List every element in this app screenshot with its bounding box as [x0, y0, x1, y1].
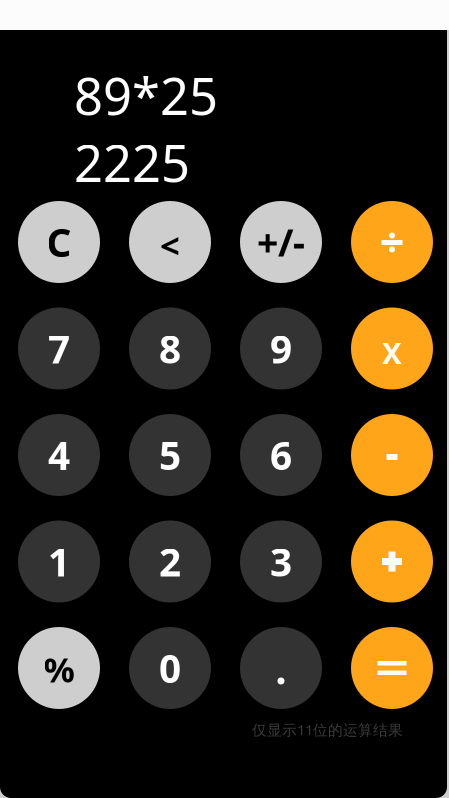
button[interactable]: 7: [18, 307, 100, 389]
button[interactable]: Toggle sign: [240, 201, 322, 283]
button[interactable]: Percent: [18, 627, 100, 709]
button[interactable]: 6: [240, 414, 322, 496]
button[interactable]: Minus: [351, 414, 433, 496]
button[interactable]: Plus: [351, 520, 433, 602]
staticText: 5: [159, 429, 181, 481]
staticText: 2225: [74, 129, 190, 196]
staticText: 6: [270, 429, 292, 481]
button[interactable]: 0: [129, 627, 211, 709]
button[interactable]: 5: [129, 414, 211, 496]
staticText: 0: [159, 642, 181, 694]
staticText: %: [43, 646, 74, 692]
button[interactable]: Equals: [351, 627, 433, 709]
staticText: 3: [270, 536, 292, 587]
button[interactable]: 2: [129, 520, 211, 602]
staticText: 2: [159, 536, 181, 587]
staticText: X: [382, 333, 402, 372]
staticText: C: [46, 216, 71, 268]
button[interactable]: 4: [18, 414, 100, 496]
staticText: +/-: [257, 217, 305, 267]
button[interactable]: Decimal point: [240, 627, 322, 709]
staticText: 7: [48, 323, 70, 374]
button[interactable]: 3: [240, 520, 322, 602]
staticText: 89*25: [74, 62, 218, 129]
button[interactable]: 8: [129, 307, 211, 389]
staticText: 9: [270, 323, 292, 374]
button[interactable]: 1: [18, 520, 100, 602]
staticText: 8: [159, 323, 181, 374]
button[interactable]: Divide: [351, 201, 433, 283]
button[interactable]: Backspace: [129, 201, 211, 283]
staticText: 4: [48, 429, 70, 481]
button[interactable]: Clear: [18, 201, 100, 283]
staticText: <: [160, 222, 180, 268]
staticText: 仅显示11位的运算结果: [252, 720, 403, 739]
button[interactable]: Multiply: [351, 307, 433, 389]
staticText: 1: [48, 536, 70, 587]
button[interactable]: 9: [240, 307, 322, 389]
